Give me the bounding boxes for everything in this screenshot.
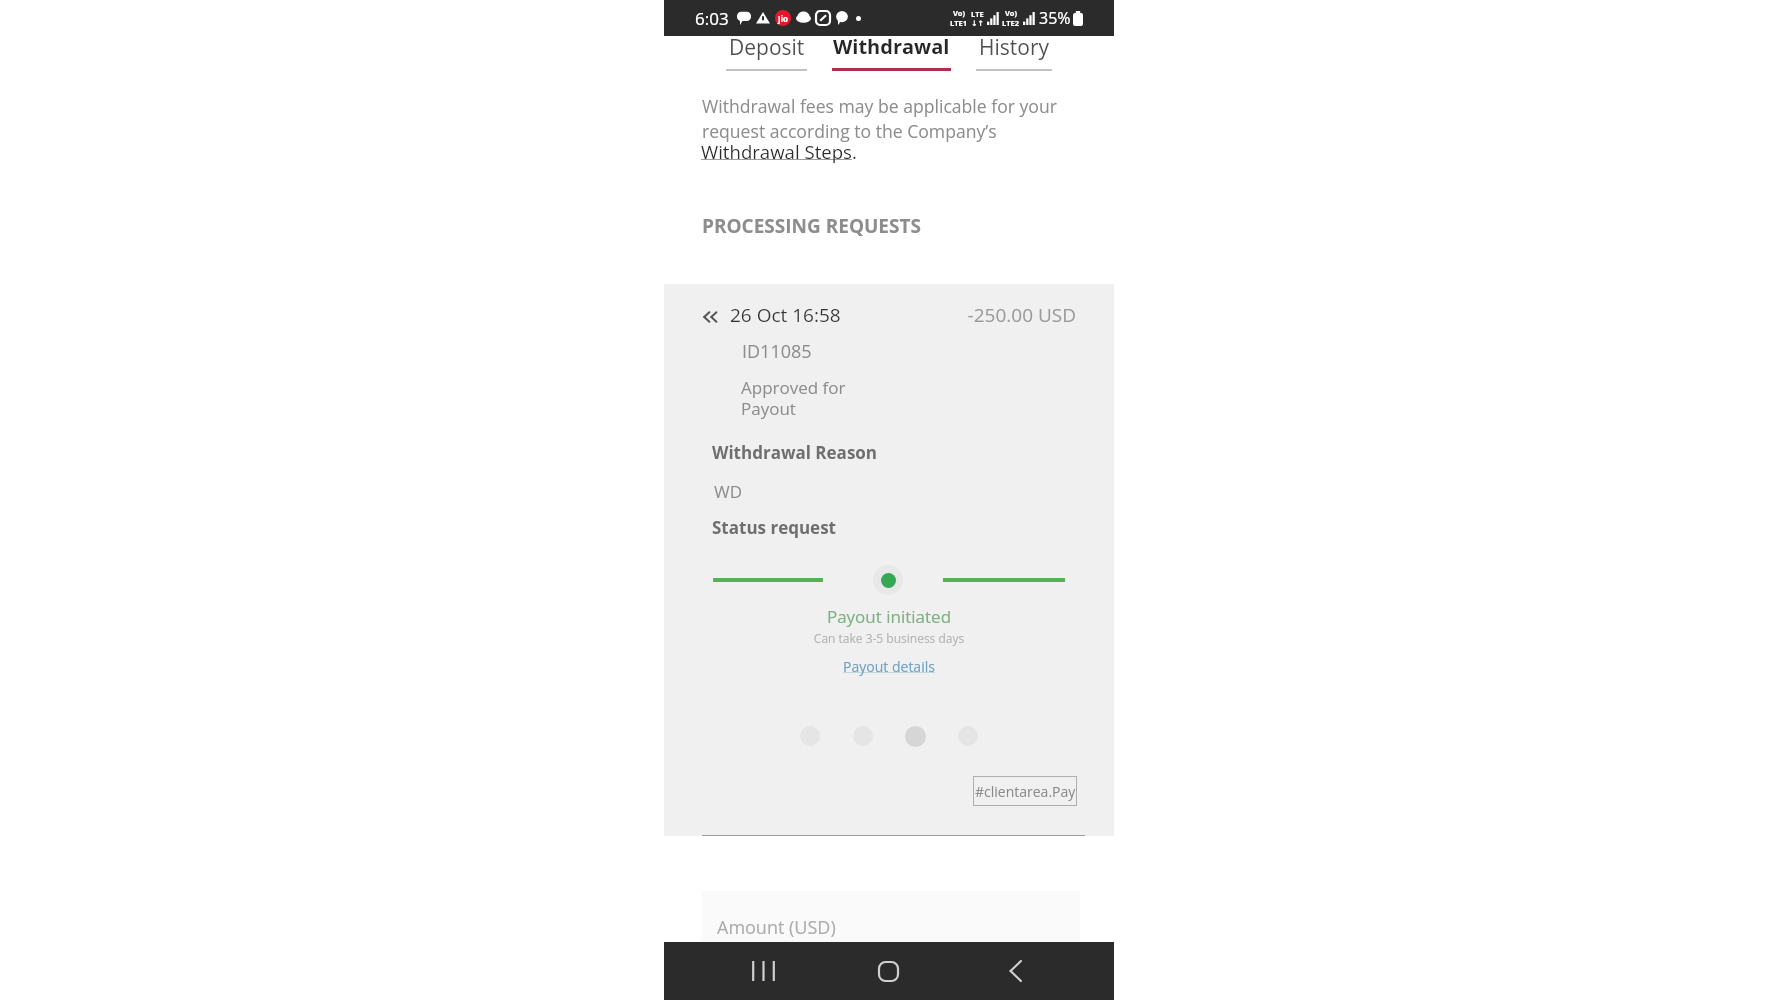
staticText: ↓↑ [971,19,984,28]
staticText: -250.00 USD [907,302,1076,328]
button[interactable]: Payout details [664,657,1114,676]
staticText: Deposit [729,33,805,62]
button[interactable]: History [964,36,1114,74]
staticText: LTE1 [950,18,968,28]
button[interactable]: Recent apps [733,942,793,1000]
staticText: LTE2 [1002,18,1020,28]
staticText: Jio [778,13,789,24]
button[interactable]: Home [858,942,918,1000]
button[interactable]: Withdrawal [814,36,964,74]
staticText: LTE [971,9,984,19]
staticText: Payout initiated [664,605,1114,628]
staticText: PROCESSING REQUESTS [702,213,921,239]
staticText: 35% [1039,7,1071,29]
staticText: 26 Oct 16:58 [730,302,841,328]
staticText: WD [714,480,743,503]
button[interactable]: Back [985,942,1045,1000]
staticText: Can take 3-5 business days [664,630,1114,646]
staticText: Amount (USD) [717,915,836,940]
staticText: Withdrawal [833,33,950,60]
staticText: Vo) [953,8,966,18]
staticText: ID11085 [742,339,812,364]
staticText: . [852,139,857,164]
staticText: History [979,33,1050,62]
staticText: Approved for Payout [741,376,846,420]
staticText: Vo) [1005,8,1018,18]
staticText: Withdrawal Reason [712,441,878,464]
staticText: Withdrawal fees may be applicable for yo… [702,94,1074,143]
staticText: Status request [712,516,836,539]
staticText: 6:03 [695,7,729,30]
staticText: #clientarea.Pay [975,782,1076,801]
button[interactable]: Withdrawal Steps [701,139,852,164]
button[interactable]: Deposit [664,36,814,74]
